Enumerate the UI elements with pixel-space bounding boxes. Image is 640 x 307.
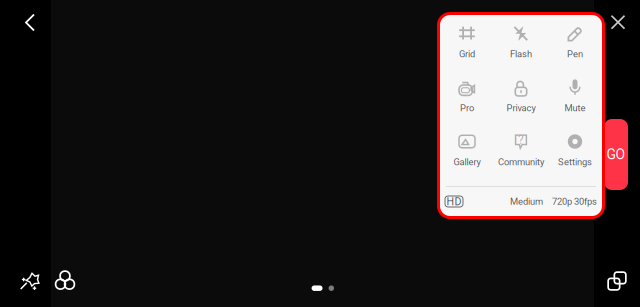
staticText: Pro xyxy=(460,102,474,113)
staticText: ? xyxy=(518,132,524,147)
button[interactable]: Close xyxy=(600,4,636,40)
staticText: HD xyxy=(446,195,461,208)
staticText: 720p 30fps xyxy=(552,196,597,207)
staticText: Pen xyxy=(567,48,583,59)
button[interactable]: 720p 30fps xyxy=(552,196,597,207)
button[interactable]: Gallery xyxy=(440,123,494,177)
staticText: Mute xyxy=(564,102,585,113)
button[interactable]: Filters xyxy=(46,262,84,300)
staticText: Settings xyxy=(558,156,592,167)
button[interactable]: Grid xyxy=(440,15,494,69)
button[interactable]: Back xyxy=(13,3,46,42)
button[interactable]: GO xyxy=(604,119,628,190)
button[interactable]: Effects xyxy=(8,260,48,301)
staticText: Gallery xyxy=(453,156,480,167)
button[interactable]: Medium xyxy=(510,196,543,207)
button[interactable]: Pen xyxy=(548,15,602,69)
button[interactable]: Flash xyxy=(494,15,548,69)
staticText: Privacy xyxy=(506,102,535,113)
button[interactable]: HD xyxy=(445,196,463,207)
staticText: Medium xyxy=(510,196,543,207)
staticText: Community xyxy=(498,156,544,167)
staticText: Grid xyxy=(459,48,475,59)
staticText: GO xyxy=(606,146,625,163)
staticText: Flash xyxy=(510,48,532,59)
button[interactable]: Privacy xyxy=(494,69,548,123)
button[interactable]: Settings xyxy=(548,123,602,177)
button[interactable]: Mute xyxy=(548,69,602,123)
button[interactable]: ? xyxy=(494,123,548,177)
button[interactable]: Switch camera xyxy=(598,262,636,300)
button[interactable]: Pro xyxy=(440,69,494,123)
